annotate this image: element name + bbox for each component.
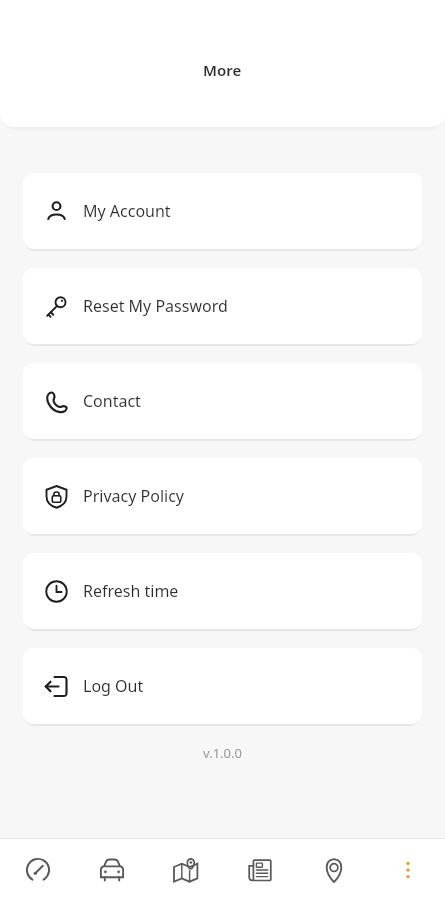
staticText: More — [203, 60, 242, 80]
button[interactable]: Map — [149, 839, 223, 900]
button[interactable]: Places — [297, 839, 371, 900]
button[interactable]: More options — [371, 839, 445, 900]
button[interactable]: Log Out — [23, 648, 422, 724]
staticText: v.1.0.0 — [0, 744, 445, 762]
staticText: My Account — [83, 200, 171, 222]
button[interactable]: Dashboard — [0, 839, 75, 900]
button[interactable]: Reset My Password — [23, 268, 422, 344]
button[interactable]: My Account — [23, 173, 422, 249]
button[interactable]: Vehicles — [75, 839, 149, 900]
button[interactable]: Reports — [223, 839, 297, 900]
button[interactable]: Privacy Policy — [23, 458, 422, 534]
button[interactable]: Contact — [23, 363, 422, 439]
staticText: Log Out — [83, 675, 144, 697]
staticText: Reset My Password — [83, 295, 228, 317]
staticText: Refresh time — [83, 580, 179, 602]
button[interactable]: Refresh time — [23, 553, 422, 629]
staticText: Privacy Policy — [83, 485, 184, 507]
staticText: Contact — [83, 390, 141, 412]
